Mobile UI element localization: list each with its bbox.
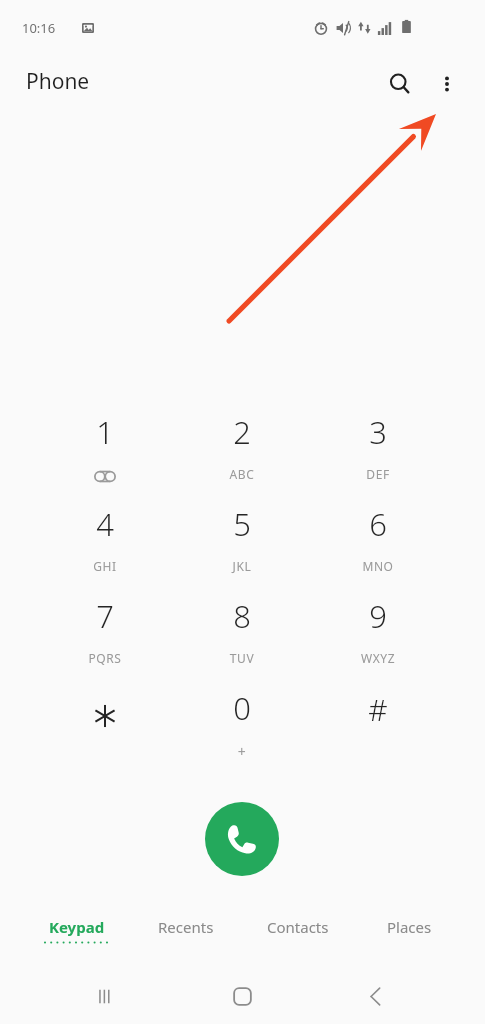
- button[interactable]: 5: [186, 501, 298, 579]
- staticText: 1: [49, 411, 161, 453]
- button[interactable]: Keypad: [28, 905, 124, 951]
- staticText: 3: [322, 411, 434, 453]
- staticText: 8: [186, 595, 298, 637]
- staticText: 6: [322, 503, 434, 545]
- staticText: 2: [186, 411, 298, 453]
- button[interactable]: Contacts: [242, 905, 354, 951]
- button[interactable]: 3: [322, 409, 434, 487]
- staticText: 5: [186, 503, 298, 545]
- button[interactable]: 7: [49, 593, 161, 671]
- staticText: TUV: [186, 650, 298, 666]
- staticText: Contacts: [267, 917, 329, 937]
- button[interactable]: More options: [425, 62, 469, 106]
- staticText: 0: [186, 687, 298, 729]
- button[interactable]: 0: [186, 685, 298, 763]
- button[interactable]: Pound: [322, 685, 434, 763]
- staticText: #: [322, 689, 434, 730]
- button[interactable]: Home: [214, 968, 270, 1024]
- button[interactable]: Search: [378, 62, 422, 106]
- staticText: Phone: [26, 67, 90, 96]
- staticText: MNO: [322, 558, 434, 574]
- staticText: DEF: [322, 466, 434, 482]
- staticText: ABC: [186, 466, 298, 482]
- staticText: PQRS: [49, 650, 161, 666]
- staticText: Keypad: [49, 917, 105, 937]
- button[interactable]: 6: [322, 501, 434, 579]
- staticText: 9: [322, 595, 434, 637]
- button[interactable]: 2: [186, 409, 298, 487]
- staticText: 4: [49, 503, 161, 545]
- button[interactable]: Places: [361, 905, 457, 951]
- button[interactable]: Back: [347, 968, 403, 1024]
- staticText: WXYZ: [322, 650, 434, 666]
- staticText: GHI: [49, 558, 161, 574]
- button[interactable]: Recent apps: [77, 968, 133, 1024]
- button[interactable]: Call: [205, 802, 279, 876]
- button[interactable]: 1: [49, 409, 161, 487]
- button[interactable]: 4: [49, 501, 161, 579]
- staticText: Places: [387, 917, 432, 937]
- staticText: 10:16: [22, 19, 56, 37]
- button[interactable]: Recents: [133, 905, 239, 951]
- button[interactable]: 9: [322, 593, 434, 671]
- button[interactable]: Star: [49, 685, 161, 763]
- staticText: JKL: [186, 558, 298, 574]
- button[interactable]: 8: [186, 593, 298, 671]
- staticText: 7: [49, 595, 161, 637]
- staticText: Recents: [158, 917, 214, 937]
- staticText: +: [186, 742, 298, 761]
